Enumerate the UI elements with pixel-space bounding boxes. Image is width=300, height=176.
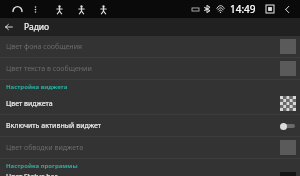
button[interactable]: Включить активный виджет xyxy=(0,115,300,136)
button[interactable]: Цвет виджета xyxy=(0,93,300,114)
staticText: Включить активный виджет xyxy=(6,121,101,131)
button[interactable]: Home xyxy=(8,0,26,18)
staticText: Настройка виджета xyxy=(6,83,68,91)
button[interactable]: Цвет обводки виджета xyxy=(0,137,300,158)
staticText: Цвет Status bar xyxy=(6,172,58,176)
button[interactable]: Status icon 1 xyxy=(50,0,68,18)
button[interactable]: Status icon 2 xyxy=(72,0,90,18)
button[interactable]: Цвет фона сообщения xyxy=(0,36,300,57)
button[interactable]: Цвет Status bar xyxy=(0,172,300,176)
staticText: Настройка программы xyxy=(6,162,78,170)
button[interactable]: Navigate up xyxy=(0,18,18,36)
staticText: Цвет фона сообщения xyxy=(6,42,83,52)
staticText: Цвет виджета xyxy=(6,99,53,109)
staticText: Радио xyxy=(24,21,50,33)
button[interactable]: Toggle active widget xyxy=(280,121,296,131)
staticText: Цвет текста в сообщении xyxy=(6,64,92,74)
button[interactable]: Recents xyxy=(262,1,278,17)
button[interactable]: More options xyxy=(26,0,44,18)
staticText: Цвет обводки виджета xyxy=(6,143,84,153)
button[interactable]: Status icon 3 xyxy=(94,0,112,18)
button[interactable]: Цвет текста в сообщении xyxy=(0,58,300,79)
button[interactable]: Choose colour xyxy=(280,96,296,111)
button[interactable]: Back xyxy=(278,0,296,18)
staticText: 14:49 xyxy=(230,2,256,16)
